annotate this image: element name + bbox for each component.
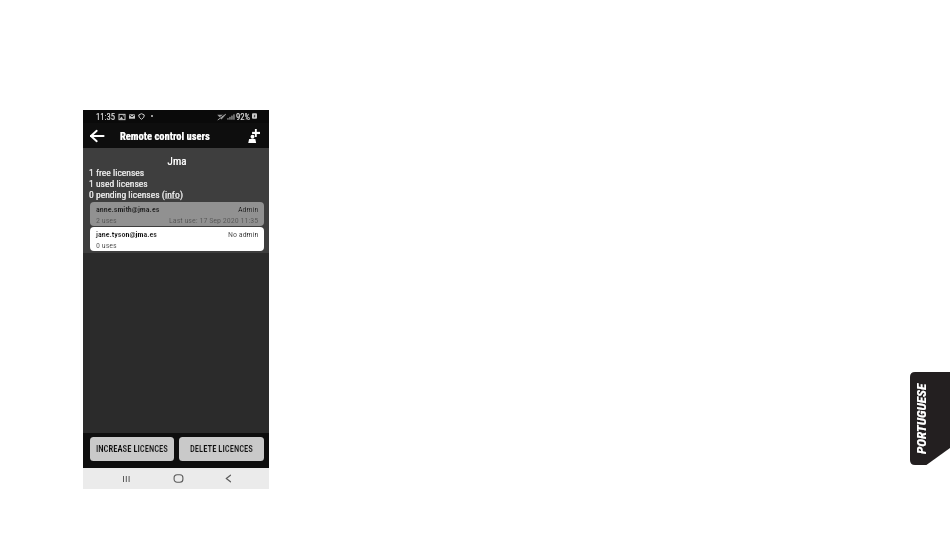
staticText: jane.tyson@jma.es — [96, 230, 157, 239]
button[interactable]: DELETE LICENCES — [179, 437, 264, 461]
button[interactable]: info — [165, 189, 180, 200]
staticText: 92% — [236, 112, 250, 122]
button[interactable]: INCREASE LICENCES — [90, 437, 174, 461]
staticText: 1 used licenses — [89, 178, 148, 189]
staticText: 2 uses — [96, 216, 117, 225]
button[interactable]: Recent apps — [116, 468, 136, 489]
button[interactable]: Back — [218, 468, 238, 489]
staticText: 0 pending licenses ( — [89, 189, 165, 200]
staticText: 1 free licenses — [89, 167, 145, 178]
button[interactable]: Add user — [240, 123, 268, 148]
button[interactable]: Home — [168, 468, 188, 489]
button[interactable]: anne.smith@jma.es — [90, 202, 264, 226]
staticText: 0 uses — [96, 241, 117, 250]
staticText: INCREASE LICENCES — [96, 444, 168, 454]
staticText: Last use: 17 Sep 2020 11:35 — [169, 216, 259, 225]
button[interactable]: PORTUGUESE — [910, 372, 950, 465]
staticText: No admin — [228, 230, 259, 239]
staticText: 11:35 — [96, 112, 115, 122]
staticText: PORTUGUESE — [914, 383, 929, 454]
staticText: Remote control users — [120, 130, 210, 142]
staticText: Jma — [84, 155, 270, 168]
staticText: DELETE LICENCES — [190, 444, 253, 454]
staticText: anne.smith@jma.es — [96, 205, 160, 214]
button[interactable]: Back — [86, 123, 108, 148]
staticText: ) — [180, 189, 184, 200]
button[interactable]: jane.tyson@jma.es — [90, 227, 264, 251]
staticText: Admin — [238, 205, 259, 214]
